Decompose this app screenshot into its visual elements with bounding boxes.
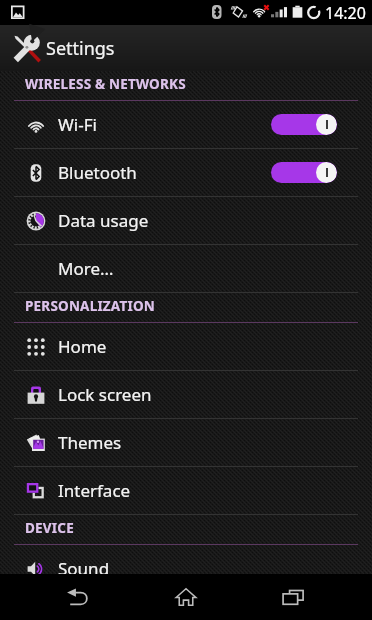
staticText: More… — [58, 257, 114, 280]
button[interactable]: Toggle Wi-Fi — [271, 114, 337, 135]
button[interactable]: Lock screen — [0, 371, 372, 418]
staticText: 14:20 — [325, 2, 366, 24]
staticText: Wi-Fi — [58, 113, 97, 136]
button[interactable]: Recent apps — [240, 574, 348, 620]
staticText: DEVICE — [25, 519, 74, 537]
staticText: Lock screen — [58, 383, 152, 406]
button[interactable]: Wi-Fi — [0, 101, 372, 148]
button[interactable]: Data usage — [0, 197, 372, 244]
button[interactable]: Themes — [0, 419, 372, 466]
staticText: PERSONALIZATION — [25, 297, 155, 315]
button[interactable]: More… — [0, 245, 372, 292]
staticText: WIRELESS & NETWORKS — [25, 75, 186, 93]
staticText: Themes — [58, 431, 122, 454]
staticText: Data usage — [58, 209, 149, 232]
button[interactable]: Home — [0, 323, 372, 370]
staticText: Interface — [58, 479, 131, 502]
button[interactable]: Home — [132, 574, 240, 620]
staticText: Sound — [58, 557, 110, 580]
button[interactable]: Back — [24, 574, 132, 620]
button[interactable]: Toggle Bluetooth — [271, 162, 337, 183]
button[interactable]: Sound — [0, 545, 372, 592]
staticText: Home — [58, 335, 107, 358]
staticText: Bluetooth — [58, 161, 137, 184]
staticText: Settings — [46, 36, 115, 61]
button[interactable]: Bluetooth — [0, 149, 372, 196]
button[interactable]: Interface — [0, 467, 372, 514]
